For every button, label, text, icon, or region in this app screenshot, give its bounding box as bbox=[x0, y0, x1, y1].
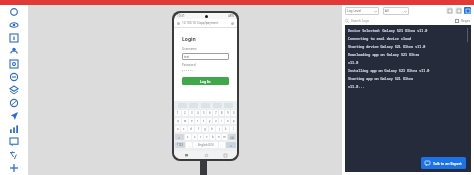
button[interactable]: English (US) bbox=[193, 142, 218, 148]
button[interactable]: i bbox=[219, 118, 224, 124]
button[interactable]: e bbox=[189, 118, 194, 124]
button[interactable]: 7 bbox=[213, 110, 218, 116]
button[interactable]: ⇧ bbox=[175, 134, 184, 140]
button[interactable]: 6 bbox=[207, 110, 212, 116]
button[interactable]: Block bbox=[0, 70, 28, 83]
button[interactable]: q bbox=[175, 118, 181, 124]
button[interactable]: Analytics bbox=[0, 122, 28, 135]
button[interactable]: , bbox=[186, 142, 192, 148]
button[interactable]: Globe bbox=[0, 96, 28, 109]
button[interactable]: Back bbox=[179, 151, 193, 159]
staticText: Device Selected: Galaxy S21 Ultra v11.0 bbox=[348, 28, 428, 33]
staticText: Login bbox=[182, 36, 196, 43]
button[interactable]: Expand logs bbox=[464, 7, 471, 14]
staticText: p bbox=[233, 119, 235, 123]
staticText: Search Logs bbox=[351, 19, 370, 23]
button[interactable]: ↵ bbox=[226, 142, 236, 148]
button[interactable]: Regex toggle bbox=[455, 19, 459, 23]
staticText: i bbox=[221, 119, 222, 123]
button[interactable]: p bbox=[231, 118, 236, 124]
button[interactable]: 1 bbox=[175, 110, 181, 116]
button[interactable]: 2 bbox=[182, 110, 188, 116]
button[interactable]: m bbox=[222, 134, 227, 140]
staticText: . bbox=[222, 143, 223, 147]
button[interactable]: ?123 bbox=[175, 142, 185, 148]
button[interactable]: Talk to an Expert bbox=[421, 157, 466, 169]
button[interactable]: 0 bbox=[231, 110, 236, 116]
button[interactable]: Scan bbox=[0, 57, 28, 70]
button[interactable]: 9 bbox=[225, 110, 230, 116]
button[interactable]: o bbox=[225, 118, 230, 124]
button[interactable]: Log Level bbox=[347, 7, 377, 15]
button[interactable]: ⌫ bbox=[228, 134, 236, 140]
button[interactable]: s bbox=[181, 126, 187, 132]
button[interactable]: Add bbox=[0, 161, 28, 174]
button[interactable]: Chat bbox=[0, 135, 28, 148]
button[interactable]: Send bbox=[0, 109, 28, 122]
staticText: 7 bbox=[215, 111, 217, 115]
button[interactable]: w bbox=[182, 118, 188, 124]
button[interactable]: 4 bbox=[195, 110, 200, 116]
staticText: ⇧ bbox=[178, 136, 181, 139]
button[interactable]: 3 bbox=[189, 110, 194, 116]
staticText: t bbox=[203, 119, 205, 123]
button[interactable]: t bbox=[201, 118, 206, 124]
staticText: v11.0 bbox=[348, 60, 359, 65]
staticText: r bbox=[197, 119, 199, 123]
button[interactable]: Info bbox=[0, 31, 28, 44]
button[interactable]: z bbox=[185, 134, 191, 140]
button[interactable]: r bbox=[195, 118, 200, 124]
button[interactable]: g bbox=[202, 126, 208, 132]
staticText: k bbox=[225, 127, 227, 131]
button[interactable]: Copy logs bbox=[446, 7, 453, 14]
button[interactable]: 5 bbox=[201, 110, 206, 116]
staticText: Talk to an Expert bbox=[433, 161, 462, 166]
staticText: b bbox=[212, 135, 214, 139]
button[interactable]: d bbox=[188, 126, 194, 132]
button[interactable]: j bbox=[216, 126, 222, 132]
button[interactable]: Recents bbox=[218, 151, 232, 159]
button[interactable]: f bbox=[195, 126, 201, 132]
button[interactable]: Layers bbox=[0, 83, 28, 96]
button[interactable]: b bbox=[210, 134, 215, 140]
button[interactable]: Person bbox=[0, 44, 28, 57]
button[interactable]: u bbox=[213, 118, 218, 124]
button[interactable]: c bbox=[198, 134, 203, 140]
button[interactable]: . bbox=[219, 142, 225, 148]
staticText: 0 bbox=[233, 111, 235, 115]
button[interactable]: Visibility bbox=[0, 18, 28, 31]
staticText: , bbox=[189, 143, 190, 147]
button[interactable]: h bbox=[209, 126, 215, 132]
staticText: j bbox=[219, 127, 220, 131]
button[interactable]: Home bbox=[0, 5, 28, 18]
staticText: English (US) bbox=[198, 143, 214, 147]
button[interactable]: Log In bbox=[182, 77, 229, 85]
button[interactable]: All bbox=[385, 7, 407, 15]
staticText: Regex bbox=[461, 19, 471, 23]
button[interactable]: Translate bbox=[0, 148, 28, 161]
button[interactable]: v bbox=[204, 134, 209, 140]
button[interactable]: x bbox=[192, 134, 197, 140]
staticText: w bbox=[184, 119, 187, 123]
button[interactable]: y bbox=[207, 118, 212, 124]
staticText: Starting app on Galaxy S21 Ultra bbox=[348, 76, 414, 81]
button[interactable]: Pause logs bbox=[455, 7, 462, 14]
button[interactable]: n bbox=[216, 134, 221, 140]
staticText: o bbox=[227, 119, 229, 123]
button[interactable]: a bbox=[175, 126, 180, 132]
button[interactable]: Home bbox=[199, 151, 213, 159]
button[interactable]: 8 bbox=[219, 110, 224, 116]
staticText: e bbox=[191, 119, 193, 123]
staticText: x bbox=[194, 135, 196, 139]
button[interactable]: l bbox=[230, 126, 236, 132]
staticText: 8 bbox=[221, 111, 223, 115]
staticText: 9 bbox=[227, 111, 229, 115]
button[interactable]: k bbox=[223, 126, 229, 132]
staticText: 5 bbox=[203, 111, 205, 115]
staticText: ↵ bbox=[230, 144, 233, 147]
